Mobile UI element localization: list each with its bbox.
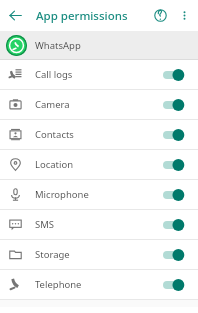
button[interactable]: More options bbox=[173, 0, 195, 31]
staticText: Telephone bbox=[35, 278, 82, 291]
staticText: Storage bbox=[35, 248, 70, 261]
staticText: App permissions bbox=[36, 8, 128, 24]
button[interactable]: Camera bbox=[0, 90, 198, 119]
button[interactable]: Toggle permission bbox=[163, 156, 189, 174]
button[interactable]: Toggle permission bbox=[163, 96, 189, 114]
staticText: Call logs bbox=[35, 68, 73, 81]
button[interactable]: Toggle permission bbox=[163, 186, 189, 204]
button[interactable]: Toggle permission bbox=[163, 126, 189, 144]
staticText: SMS bbox=[35, 218, 55, 231]
staticText: WhatsApp bbox=[35, 39, 81, 52]
button[interactable]: Storage bbox=[0, 240, 198, 269]
button[interactable]: Toggle permission bbox=[163, 276, 189, 294]
button[interactable]: Microphone bbox=[0, 180, 198, 209]
button[interactable]: Help bbox=[147, 0, 173, 31]
button[interactable]: Navigate up bbox=[0, 0, 31, 31]
staticText: Contacts bbox=[35, 128, 74, 141]
button[interactable]: Toggle permission bbox=[163, 216, 189, 234]
button[interactable]: Telephone bbox=[0, 270, 198, 299]
button[interactable]: WhatsApp bbox=[0, 31, 198, 59]
button[interactable]: SMS bbox=[0, 210, 198, 239]
button[interactable]: Location bbox=[0, 150, 198, 179]
button[interactable]: Toggle permission bbox=[163, 66, 189, 84]
button[interactable]: Call logs bbox=[0, 60, 198, 89]
staticText: Microphone bbox=[35, 188, 89, 201]
button[interactable]: Contacts bbox=[0, 120, 198, 149]
button[interactable]: Toggle permission bbox=[163, 246, 189, 264]
staticText: Camera bbox=[35, 98, 70, 111]
staticText: Location bbox=[35, 158, 74, 171]
